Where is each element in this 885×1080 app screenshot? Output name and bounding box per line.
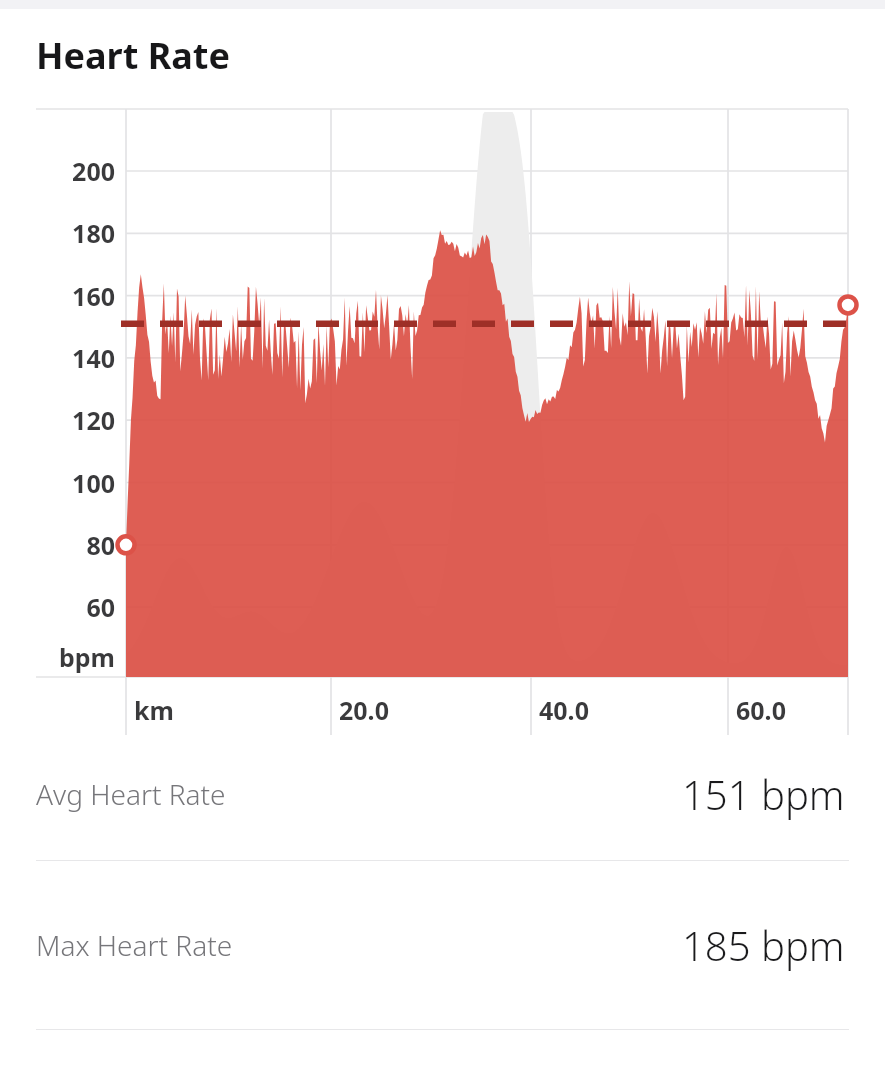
staticText: km [134,693,174,727]
staticText: bpm [0,640,115,674]
staticText: 140 [0,341,115,375]
button[interactable]: Max Heart Rate [0,861,885,1029]
button[interactable]: Avg Heart Rate [0,728,885,860]
staticText: Avg Heart Rate [36,775,226,813]
staticText: 60.0 [736,693,786,727]
staticText: 151 bpm [682,767,845,821]
staticText: 120 [0,403,115,437]
staticText: 100 [0,466,115,500]
staticText: Heart Rate [36,31,230,80]
staticText: 160 [0,279,115,313]
staticText: 185 bpm [682,918,845,972]
staticText: 80 [0,528,115,562]
button[interactable]: 200 [0,96,885,728]
staticText: 200 [0,154,115,188]
staticText: 60 [0,590,115,624]
staticText: 40.0 [539,693,589,727]
staticText: 20.0 [339,693,389,727]
staticText: Max Heart Rate [36,926,233,964]
staticText: 180 [0,216,115,250]
